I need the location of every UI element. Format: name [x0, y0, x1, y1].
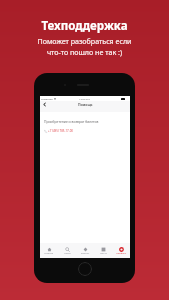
button[interactable]: Билеты	[76, 243, 94, 255]
button[interactable]: Поиск	[58, 243, 76, 255]
staticText: +7 (495) 785-17-00	[48, 129, 73, 133]
staticText: Приобретение и возврат билетов	[44, 119, 99, 124]
staticText: Оператор	[41, 97, 53, 100]
staticText: Поиск	[64, 252, 71, 255]
button[interactable]: Главная	[40, 243, 58, 255]
button[interactable]: Места	[94, 243, 112, 255]
staticText: Места	[100, 252, 107, 255]
button[interactable]: Back	[41, 101, 48, 108]
button[interactable]: +7 (495) 785-17-00	[40, 129, 130, 133]
staticText: Помощь	[78, 102, 93, 107]
staticText: Поможет разобраться если что-то пошло не…	[0, 36, 169, 57]
staticText: Билеты	[81, 252, 90, 255]
button[interactable]: Home	[78, 262, 92, 276]
staticText: Техподдержка	[0, 18, 169, 34]
staticText: Главная	[44, 252, 54, 255]
staticText: Профиль	[116, 252, 127, 255]
staticText: 12:00 PM	[79, 97, 90, 100]
button[interactable]: Профиль	[112, 243, 130, 255]
